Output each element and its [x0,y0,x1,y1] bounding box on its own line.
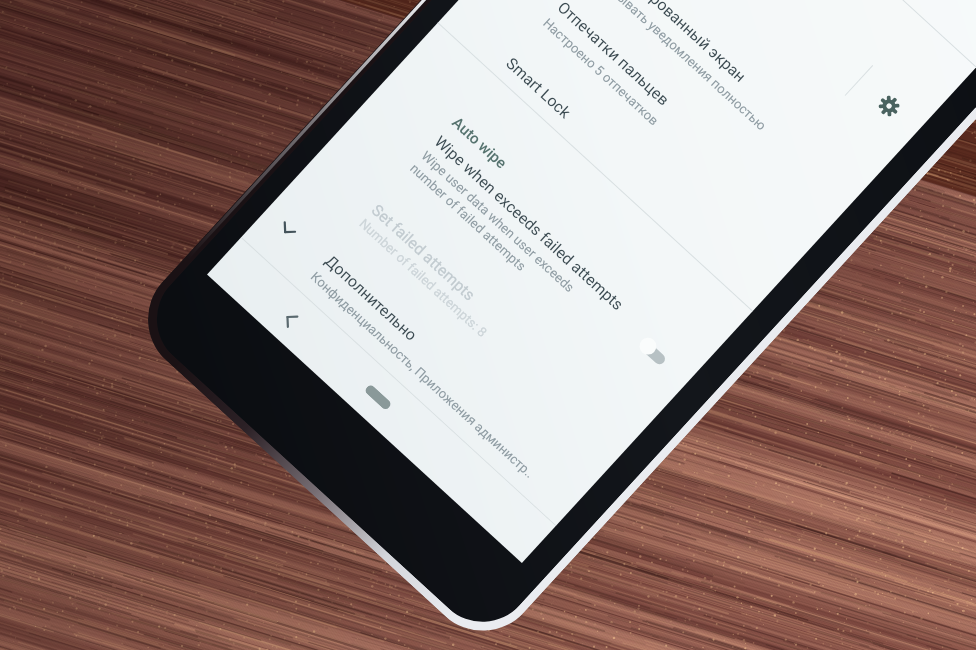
staticText: Wipe user data when user exceeds [419,148,578,295]
button[interactable]: Expand [272,214,303,245]
button[interactable]: Back [272,301,309,338]
staticText: Конфиденциальность, Приложения администр… [308,269,538,481]
staticText: Настроено 5 отпечатков [540,15,662,128]
staticText: Set failed attempts [368,200,479,305]
staticText: Показывать уведомления полностью [587,0,769,134]
staticText: Smart Lock [502,54,575,122]
button[interactable]: Screen lock settings [873,90,905,122]
button[interactable]: Auto wipe toggle [631,330,679,378]
staticText: Отпечатки пальцев [554,0,673,110]
staticText: number of failed attempts [407,161,529,274]
staticText: Дополнительно [321,251,421,345]
staticText: Auto wipe [448,113,511,173]
staticText: Wipe when exceeds failed attempts [431,132,627,314]
staticText: Number of failed attempts: 8 [356,216,490,340]
staticText: Заблокированный экран [600,0,750,86]
button[interactable]: Home [364,383,392,411]
